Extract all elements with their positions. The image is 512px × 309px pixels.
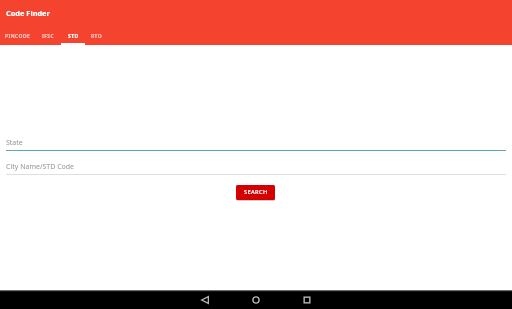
staticText: STD [68,33,79,40]
staticText: PINCODE [5,33,31,40]
button[interactable]: RTO [85,0,109,45]
staticText: Code Finder [6,8,50,18]
button[interactable]: State [6,138,506,151]
button[interactable]: Home [249,293,263,307]
staticText: State [6,138,23,148]
button[interactable]: SEARCH [236,185,275,200]
staticText: RTO [91,33,103,40]
button[interactable]: City Name/STD Code [6,162,506,175]
button[interactable]: Back [198,293,212,307]
staticText: SEARCH [244,188,268,196]
staticText: City Name/STD Code [6,162,75,172]
button[interactable]: Recents [300,293,314,307]
staticText: IFSC [42,33,55,40]
button[interactable]: PINCODE [2,0,34,45]
button[interactable]: IFSC [36,0,61,45]
button[interactable]: STD [61,0,85,45]
